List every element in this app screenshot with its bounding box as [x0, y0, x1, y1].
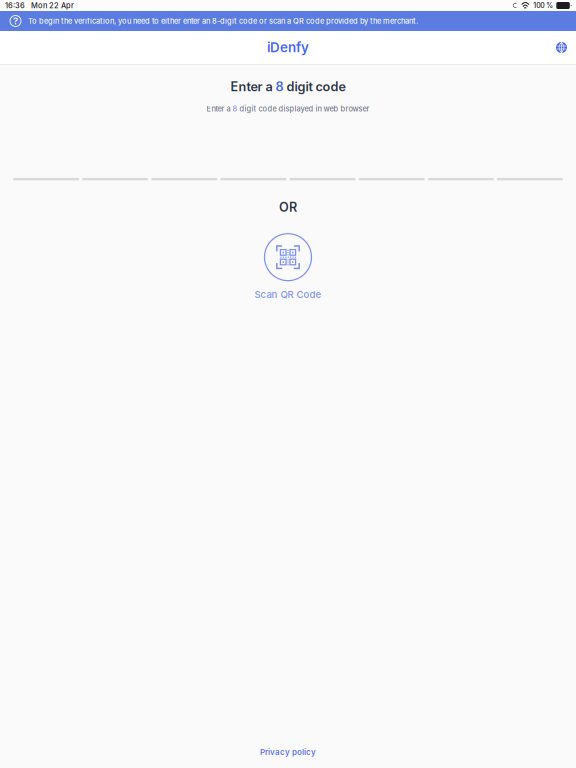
staticText: iDenfy — [267, 39, 309, 55]
button[interactable]: Digit 3 — [151, 158, 217, 180]
button[interactable]: Digit 4 — [220, 158, 286, 180]
button[interactable]: Change language — [556, 33, 576, 62]
staticText: digit code displayed in web browser — [237, 104, 369, 113]
button[interactable]: Privacy policy — [260, 740, 316, 764]
staticText: digit code — [283, 79, 345, 94]
button[interactable]: Digit 7 — [428, 158, 494, 180]
button[interactable]: Digit 6 — [359, 158, 425, 180]
button[interactable]: Digit 1 — [13, 158, 79, 180]
staticText: 100 % — [533, 1, 553, 10]
staticText: Enter a — [206, 104, 232, 113]
staticText: ? — [13, 15, 18, 27]
staticText: 16:36 — [5, 1, 25, 10]
button[interactable]: Digit 8 — [497, 158, 563, 180]
button[interactable]: Scan QR Code — [254, 234, 321, 300]
staticText: OR — [279, 199, 297, 215]
staticText: Mon 22 Apr — [31, 1, 74, 10]
staticText: 8 — [232, 104, 237, 113]
button[interactable]: Digit 5 — [289, 158, 356, 180]
staticText: Enter a — [230, 79, 275, 94]
staticText: To begin the verification, you need to e… — [28, 16, 418, 25]
staticText: Scan QR Code — [254, 289, 321, 300]
staticText: 8 — [275, 79, 283, 94]
button[interactable]: Digit 2 — [82, 158, 148, 180]
staticText: Privacy policy — [260, 747, 316, 757]
